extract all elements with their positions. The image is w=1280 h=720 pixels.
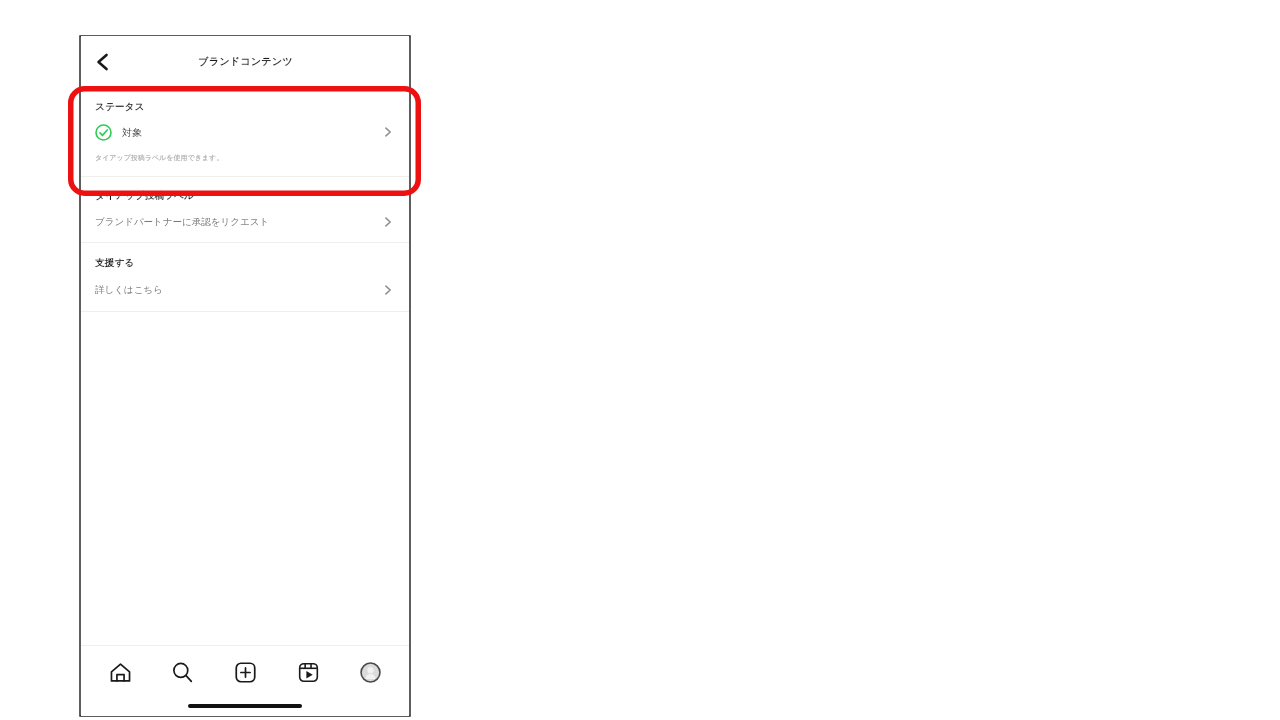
staticText: タイアップ投稿ラベルを使用できます。 [95,153,224,162]
staticText: ブランドパートナーに承認をリクエスト [95,216,270,228]
staticText: ブランドコンテンツ [198,55,293,68]
button[interactable]: Back [85,44,121,80]
staticText: ステータス [95,101,145,113]
button[interactable]: Search [158,650,206,694]
staticText: 詳しくはこちら [95,284,163,296]
button[interactable]: Reels [284,650,332,694]
button[interactable]: ブランドパートナーに承認をリクエスト [81,202,409,242]
staticText: 対象 [122,126,142,139]
button[interactable]: 詳しくはこちら [81,269,409,311]
staticText: 支援する [95,257,135,269]
button[interactable]: Create [221,650,269,694]
button[interactable]: Home [96,650,144,694]
button[interactable]: 対象 [81,113,409,151]
staticText: タイアップ投稿ラベル [95,190,194,202]
button[interactable]: Profile [346,650,394,694]
